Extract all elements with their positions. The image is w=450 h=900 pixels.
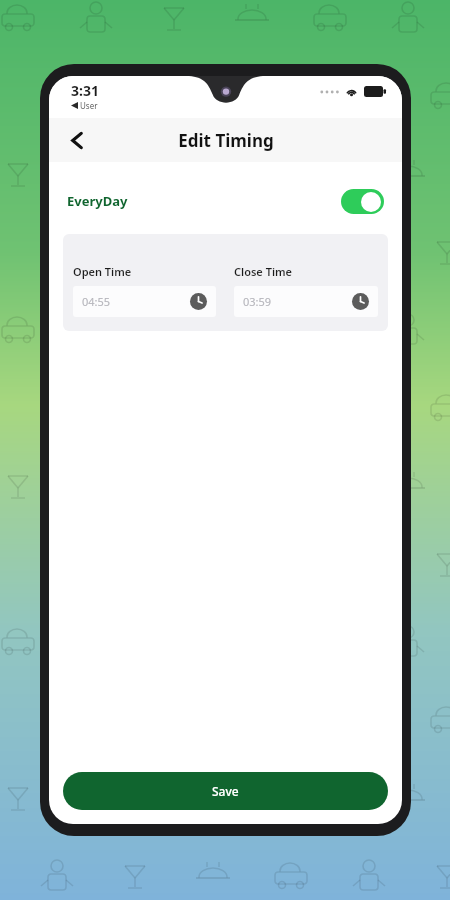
button[interactable]: EveryDay toggle [341, 189, 384, 214]
staticText: 3:31 [71, 81, 99, 100]
button[interactable]: 03:59 [234, 286, 378, 317]
staticText: Edit Timing [178, 129, 274, 152]
button[interactable]: Save [63, 772, 388, 810]
staticText: 03:59 [243, 294, 272, 309]
button[interactable]: 04:55 [73, 286, 216, 317]
staticText: Save [212, 783, 239, 799]
staticText: 04:55 [82, 294, 111, 309]
button[interactable]: Back [57, 120, 97, 160]
staticText: Close Time [234, 264, 293, 279]
staticText: EveryDay [67, 192, 128, 210]
staticText: User [80, 100, 98, 111]
staticText: Open Time [73, 264, 132, 279]
